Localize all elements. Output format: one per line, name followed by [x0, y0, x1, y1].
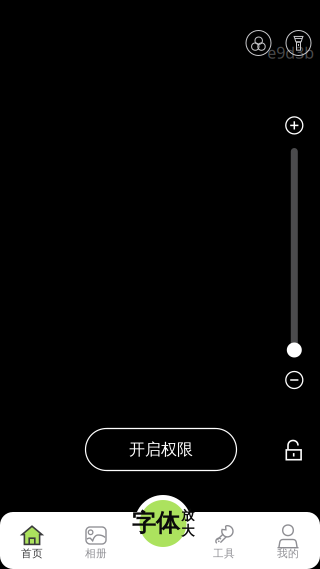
button[interactable]: Colour filter: [246, 30, 271, 55]
button[interactable]: 工具: [192, 512, 256, 569]
button[interactable]: 首页: [0, 512, 64, 569]
staticText: 字体: [132, 508, 180, 538]
button[interactable]: 相册: [64, 512, 128, 569]
staticText: 大: [181, 522, 194, 539]
button[interactable]: Zoom out: [286, 371, 303, 388]
button[interactable]: Zoom in: [286, 117, 303, 134]
staticText: 相册: [85, 547, 107, 560]
staticText: 我的: [277, 547, 299, 560]
button[interactable]: 我的: [256, 512, 320, 569]
button[interactable]: Flashlight: [286, 30, 311, 55]
button[interactable]: Unlock: [283, 437, 304, 461]
staticText: 开启权限: [129, 440, 193, 459]
staticText: 首页: [21, 547, 43, 560]
staticText: e9d3b: [267, 42, 314, 63]
staticText: 放: [181, 507, 194, 523]
staticText: 工具: [213, 547, 235, 560]
button[interactable]: 开启权限: [85, 428, 236, 470]
button[interactable]: 字体放大: [128, 495, 198, 552]
